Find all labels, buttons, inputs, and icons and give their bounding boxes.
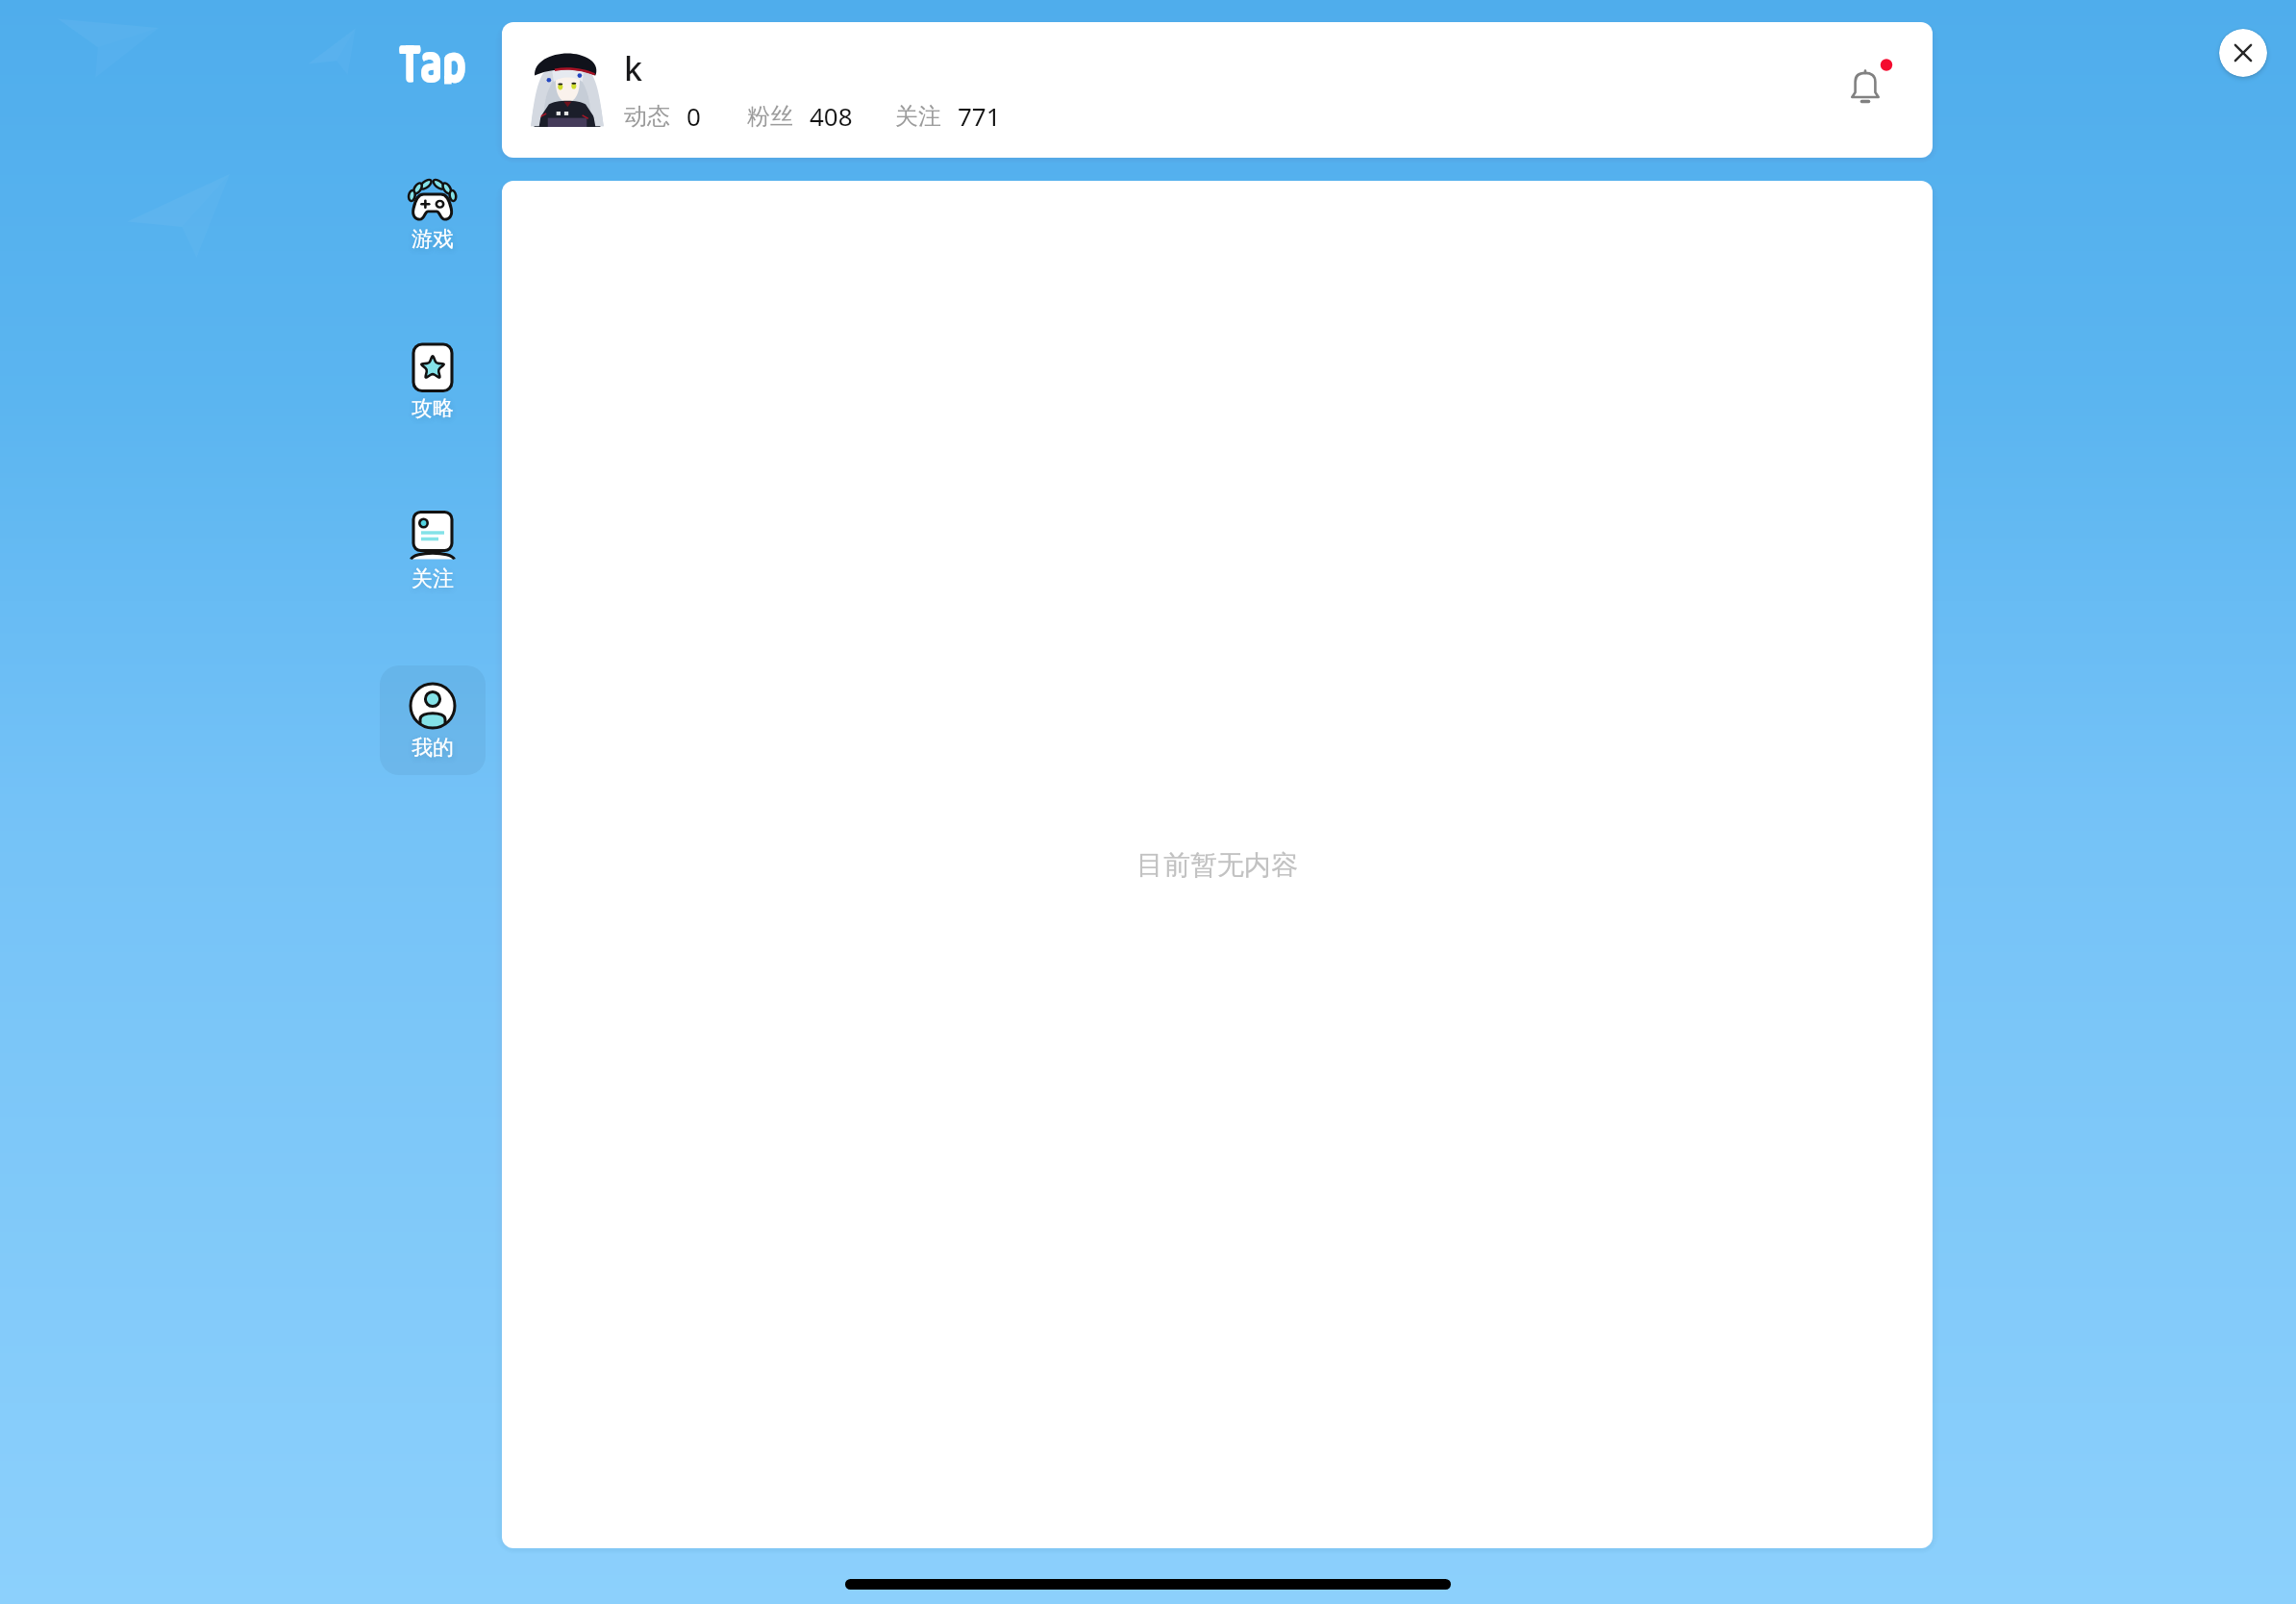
staticText: 攻略 — [412, 395, 454, 422]
button[interactable]: TapTap — [381, 29, 485, 87]
staticText: 动态 — [624, 102, 670, 131]
staticText: 粉丝 — [747, 102, 793, 131]
staticText: 771 — [958, 99, 1001, 133]
staticText: 关注 — [895, 102, 941, 131]
staticText: 关注 — [412, 565, 454, 592]
staticText: 目前暂无内容 — [1136, 848, 1298, 882]
staticText: Tap — [399, 18, 467, 84]
button[interactable]: 关注 — [895, 99, 1001, 133]
button[interactable]: 我的 — [380, 665, 486, 775]
button[interactable]: Notifications — [1829, 54, 1902, 127]
button[interactable]: 攻略 — [380, 332, 486, 424]
staticText: 0 — [686, 99, 701, 133]
staticText: 游戏 — [412, 226, 454, 253]
button[interactable]: 动态 — [624, 99, 701, 133]
button[interactable]: Close — [2219, 29, 2267, 77]
button[interactable]: 游戏 — [380, 164, 486, 255]
button[interactable]: 关注 — [380, 500, 486, 594]
staticText: 408 — [810, 99, 853, 133]
button[interactable]: 粉丝 — [747, 99, 853, 133]
staticText: k — [624, 46, 643, 90]
button[interactable]: Profile picture — [530, 52, 605, 127]
staticText: 我的 — [412, 735, 454, 762]
